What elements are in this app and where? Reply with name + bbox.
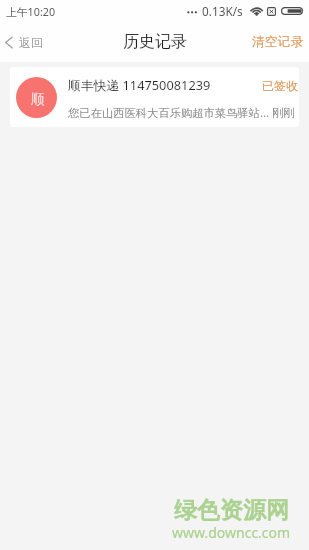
staticText: 顺 <box>31 91 45 109</box>
staticText: 历史记录 <box>123 32 187 52</box>
button[interactable]: 清空记录 <box>240 24 309 60</box>
staticText: 0.13K/s <box>202 3 243 19</box>
staticText: 绿色资源网 <box>174 496 289 525</box>
staticText: www.downcc.com <box>172 523 291 542</box>
button[interactable]: 返回 <box>0 24 55 60</box>
staticText: 上午10:20 <box>6 4 56 19</box>
staticText: 已签收 <box>262 78 298 93</box>
staticText: 清空记录 <box>252 34 304 50</box>
staticText: 返回 <box>19 35 43 50</box>
staticText: 您已在山西医科大百乐购超市菜鸟驿站... 刚刚 <box>68 105 295 120</box>
button[interactable]: 顺 <box>10 67 299 127</box>
staticText: 顺丰快递 114750081239 <box>68 76 211 93</box>
